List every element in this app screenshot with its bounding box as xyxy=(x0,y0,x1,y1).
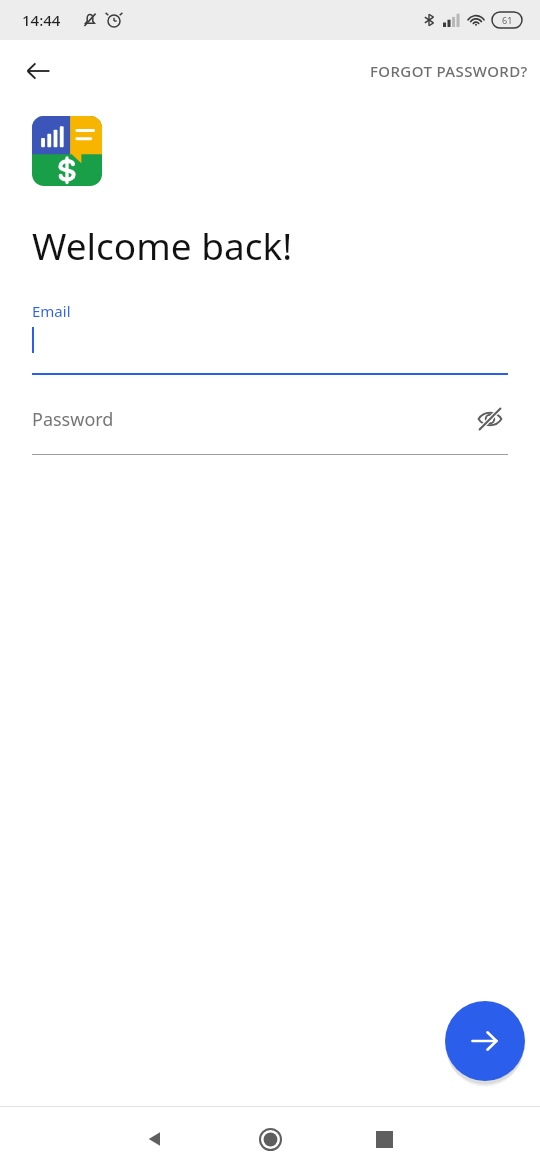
staticText: 14:44 xyxy=(22,10,61,30)
staticText: 61 xyxy=(502,14,513,26)
button[interactable]: Back xyxy=(132,1115,180,1163)
button[interactable]: Show password xyxy=(472,401,508,437)
button[interactable]: Back xyxy=(14,47,62,95)
staticText: Email xyxy=(32,301,71,321)
button[interactable]: Email xyxy=(32,301,508,375)
button[interactable]: Home xyxy=(246,1115,294,1163)
staticText: Password xyxy=(32,407,114,432)
button[interactable]: FORGOT PASSWORD? xyxy=(362,51,536,91)
staticText: Welcome back! xyxy=(32,220,293,270)
button[interactable]: Continue xyxy=(445,1001,525,1081)
button[interactable]: Password xyxy=(32,400,508,455)
staticText: FORGOT PASSWORD? xyxy=(370,61,528,81)
button[interactable]: Recent apps xyxy=(360,1115,408,1163)
